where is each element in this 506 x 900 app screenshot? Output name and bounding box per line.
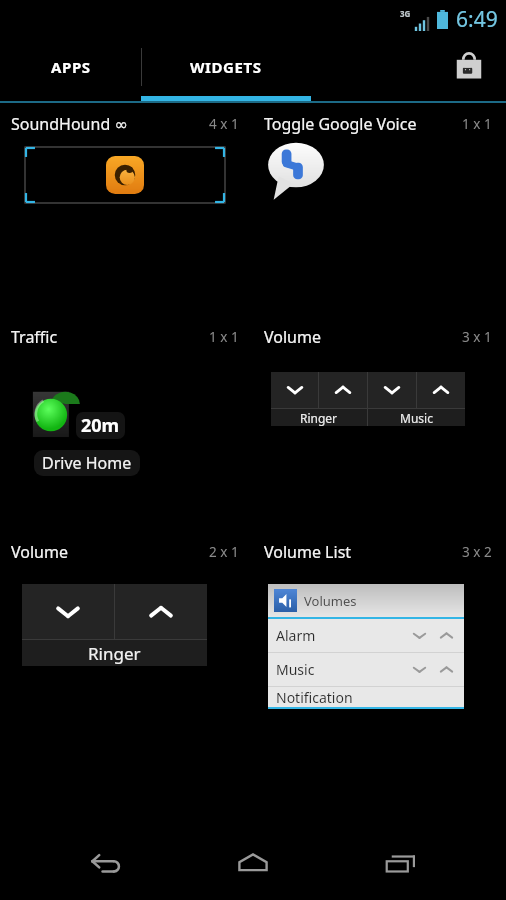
button[interactable]: Home [211, 828, 295, 900]
staticText: 2 x 1 [209, 543, 239, 561]
button[interactable]: Traffic [0, 326, 253, 541]
button[interactable]: Alarm [268, 619, 464, 652]
staticText: Drive Home [42, 452, 132, 474]
button[interactable]: SoundHound ∞ [0, 113, 253, 326]
button[interactable]: Volume up [417, 372, 465, 408]
staticText: Traffic [11, 326, 58, 348]
staticText: 4 x 1 [209, 115, 239, 133]
staticText: Ringer [300, 410, 338, 426]
button[interactable]: Volume [253, 326, 506, 541]
staticText: Ringer [88, 642, 141, 665]
staticText: 3 x 2 [462, 543, 492, 561]
button[interactable]: WIDGETS [141, 38, 311, 96]
button[interactable]: Volume up [115, 584, 207, 639]
staticText: WIDGETS [190, 57, 262, 77]
button[interactable]: Volume List [253, 541, 506, 726]
button[interactable]: Volume [0, 541, 253, 726]
staticText: Volume List [264, 541, 352, 563]
button[interactable]: Back [64, 828, 148, 900]
staticText: 3 x 1 [462, 328, 492, 346]
button[interactable]: Volume down [271, 372, 318, 408]
button[interactable]: Toggle Google Voice [253, 113, 506, 326]
staticText: SoundHound ∞ [11, 113, 128, 135]
staticText: Music [276, 660, 315, 679]
staticText: APPS [51, 57, 91, 77]
button[interactable]: Play Store [446, 44, 492, 90]
staticText: Alarm [276, 626, 316, 645]
staticText: Music [400, 410, 433, 426]
staticText: 20m [81, 413, 120, 438]
button[interactable]: Volume up [319, 372, 367, 408]
staticText: Volume [11, 541, 68, 563]
staticText: Toggle Google Voice [264, 113, 417, 135]
button[interactable]: APPS [0, 38, 141, 96]
button[interactable]: Recent apps [359, 828, 443, 900]
staticText: 3G [400, 8, 411, 19]
staticText: 1 x 1 [462, 115, 492, 133]
staticText: Volumes [304, 592, 357, 610]
staticText: 1 x 1 [209, 328, 239, 346]
button[interactable]: Music [268, 653, 464, 686]
button[interactable]: Volume down [368, 372, 416, 408]
staticText: Volume [264, 326, 321, 348]
button[interactable]: Volume down [22, 584, 114, 639]
staticText: 6:49 [456, 5, 498, 34]
staticText: Notification [276, 688, 353, 707]
